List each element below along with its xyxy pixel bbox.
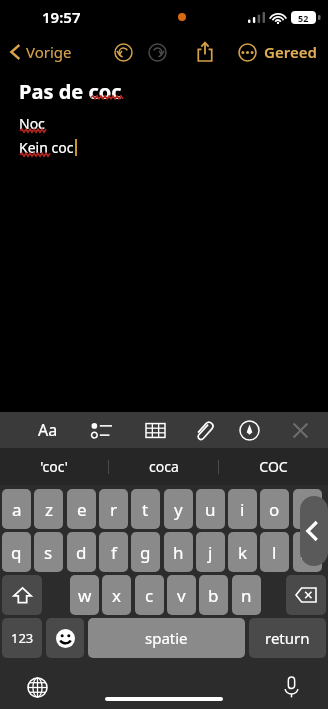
staticText: Kein coc: [19, 138, 74, 157]
button[interactable]: n: [232, 575, 261, 615]
staticText: s: [44, 541, 53, 564]
staticText: g: [140, 541, 151, 564]
button[interactable]: 123: [2, 618, 42, 658]
button[interactable]: Table: [136, 412, 174, 448]
button[interactable]: Vorige: [8, 42, 74, 62]
staticText: w: [78, 584, 92, 607]
staticText: y: [174, 498, 183, 521]
staticText: 52: [298, 12, 309, 24]
staticText: p: [302, 498, 313, 521]
staticText: z: [45, 498, 53, 521]
staticText: Noc: [19, 114, 45, 133]
button[interactable]: r: [99, 489, 128, 529]
button[interactable]: w: [70, 575, 99, 615]
button[interactable]: s: [34, 532, 63, 572]
button[interactable]: Shift: [2, 575, 42, 615]
button[interactable]: Emoji: [46, 618, 84, 658]
button[interactable]: t: [131, 489, 160, 529]
staticText: 'coc': [40, 457, 68, 476]
button[interactable]: u: [196, 489, 225, 529]
staticText: m: [300, 541, 316, 564]
button[interactable]: o: [260, 489, 289, 529]
button[interactable]: b: [199, 575, 228, 615]
staticText: v: [177, 584, 186, 607]
button[interactable]: coca: [109, 448, 218, 485]
button[interactable]: a: [2, 489, 31, 529]
button[interactable]: q: [2, 532, 31, 572]
button[interactable]: h: [164, 532, 193, 572]
staticText: Aa: [38, 419, 58, 441]
staticText: h: [173, 541, 184, 564]
staticText: c: [145, 584, 154, 607]
staticText: u: [205, 498, 216, 521]
button[interactable]: Move cursor: [300, 496, 328, 566]
button[interactable]: p: [293, 489, 322, 529]
staticText: Pas de coc: [19, 78, 122, 105]
button[interactable]: x: [102, 575, 131, 615]
button[interactable]: j: [196, 532, 225, 572]
staticText: a: [12, 498, 22, 521]
button[interactable]: Aa: [28, 413, 68, 447]
button[interactable]: Close keyboard: [281, 412, 319, 448]
staticText: l: [272, 541, 277, 564]
button[interactable]: More options: [232, 37, 262, 67]
staticText: e: [77, 498, 87, 521]
button[interactable]: v: [167, 575, 196, 615]
staticText: t: [142, 498, 149, 521]
staticText: q: [11, 541, 22, 564]
button[interactable]: Markup: [230, 412, 268, 448]
button[interactable]: m: [293, 532, 322, 572]
button[interactable]: l: [260, 532, 289, 572]
button[interactable]: Undo: [108, 37, 138, 67]
staticText: f: [111, 541, 117, 564]
staticText: i: [240, 498, 245, 521]
button[interactable]: z: [34, 489, 63, 529]
staticText: n: [241, 584, 252, 607]
button[interactable]: g: [131, 532, 160, 572]
button[interactable]: spatie: [88, 618, 245, 658]
staticText: o: [269, 498, 280, 521]
button[interactable]: Attach: [184, 412, 222, 448]
button[interactable]: c: [135, 575, 164, 615]
staticText: 19:57: [42, 7, 81, 27]
button[interactable]: Change keyboard language: [18, 668, 56, 706]
button[interactable]: f: [99, 532, 128, 572]
staticText: COC: [259, 457, 288, 476]
button[interactable]: i: [228, 489, 257, 529]
button[interactable]: Gereed: [261, 42, 320, 62]
staticText: spatie: [145, 628, 188, 648]
staticText: coca: [149, 457, 179, 476]
button[interactable]: Backspace: [286, 575, 326, 615]
button[interactable]: Redo: [142, 37, 172, 67]
staticText: b: [208, 584, 219, 607]
staticText: r: [110, 498, 118, 521]
staticText: return: [265, 628, 310, 648]
button[interactable]: y: [164, 489, 193, 529]
button[interactable]: Checklist: [82, 412, 120, 448]
button[interactable]: Dictate: [272, 668, 310, 706]
button[interactable]: d: [67, 532, 96, 572]
staticText: 123: [11, 629, 34, 647]
button[interactable]: Share: [190, 37, 220, 67]
button[interactable]: k: [228, 532, 257, 572]
staticText: j: [208, 541, 213, 564]
staticText: d: [76, 541, 87, 564]
button[interactable]: 'coc': [0, 448, 108, 485]
staticText: k: [238, 541, 248, 564]
staticText: Gereed: [264, 42, 317, 62]
button[interactable]: COC: [219, 448, 328, 485]
staticText: x: [112, 584, 121, 607]
staticText: Vorige: [26, 42, 72, 62]
button[interactable]: e: [67, 489, 96, 529]
button[interactable]: return: [249, 618, 326, 658]
